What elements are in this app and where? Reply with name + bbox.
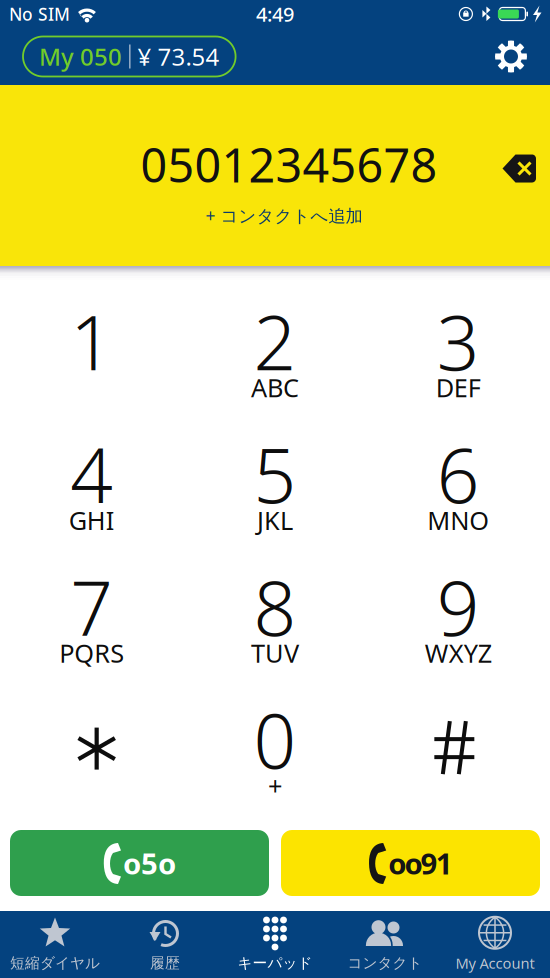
staticText: キーパッド [237,954,312,972]
staticText: 8 [253,557,296,656]
staticText: WXYZ [425,636,492,670]
staticText: 履歴 [150,954,180,972]
button[interactable]: 9 [367,545,550,678]
button[interactable]: + コンタクトへ追加 [205,204,362,227]
button[interactable]: 短縮ダイヤル [0,911,110,978]
staticText: コンタクト [347,954,422,972]
staticText: 0 [253,690,296,789]
staticText: ABC [251,371,299,404]
button[interactable]: My Account [440,911,550,978]
staticText: + コンタクトへ追加 [205,204,362,227]
button[interactable]: キーパッド [220,911,330,978]
staticText: JKL [257,503,293,537]
button[interactable]: コンタクト [330,911,440,978]
staticText: 05012345678 [140,133,437,195]
staticText: PQRS [59,636,124,670]
button[interactable]: 3 [367,280,550,413]
staticText: My Account [455,953,534,973]
staticText: + [268,769,282,802]
button[interactable]: Settings [494,39,528,73]
staticText: o5o [123,843,176,882]
staticText: 6 [437,424,480,524]
staticText: 9 [437,557,480,656]
button[interactable]: 0 [183,678,367,811]
button[interactable]: 履歴 [110,911,220,978]
button[interactable]: 4 [0,413,183,546]
staticText: ¥ 73.54 [138,41,220,72]
staticText: 4:49 [256,1,294,27]
button[interactable]: My 050 [23,36,236,76]
staticText: GHI [69,503,115,537]
button[interactable]: Star [0,678,183,811]
button[interactable]: o5o [10,830,269,896]
staticText: 3 [437,292,480,391]
staticText: No SIM [9,2,70,25]
staticText: 2 [253,292,296,391]
staticText: 短縮ダイヤル [10,954,100,972]
staticText: 7 [70,557,113,656]
staticText: MNO [427,503,489,537]
staticText: My 050 [39,41,122,72]
button[interactable]: oo91 [281,830,540,896]
staticText: DEF [436,371,481,404]
staticText: 4 [70,424,113,524]
button[interactable]: 7 [0,545,183,678]
button[interactable]: Delete [502,152,537,184]
staticText: oo91 [388,843,453,882]
button[interactable]: Pound [367,678,550,811]
staticText: TUV [251,636,299,670]
staticText: 5 [253,424,296,524]
button[interactable]: 5 [183,413,367,546]
button[interactable]: 6 [367,413,550,546]
button[interactable]: 1 [0,280,183,413]
button[interactable]: 8 [183,545,367,678]
staticText: 1 [70,292,113,391]
button[interactable]: 2 [183,280,367,413]
